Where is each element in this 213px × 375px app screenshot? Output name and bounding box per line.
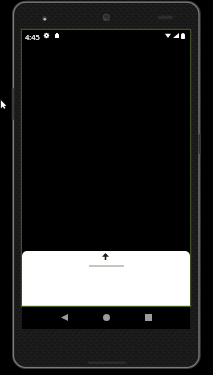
button[interactable]: Back <box>53 306 75 328</box>
button[interactable]: Home <box>95 306 117 328</box>
button[interactable]: Recent apps <box>137 306 159 328</box>
button[interactable]: Expand sheet <box>22 251 190 306</box>
staticText: 4:45 <box>25 32 40 42</box>
